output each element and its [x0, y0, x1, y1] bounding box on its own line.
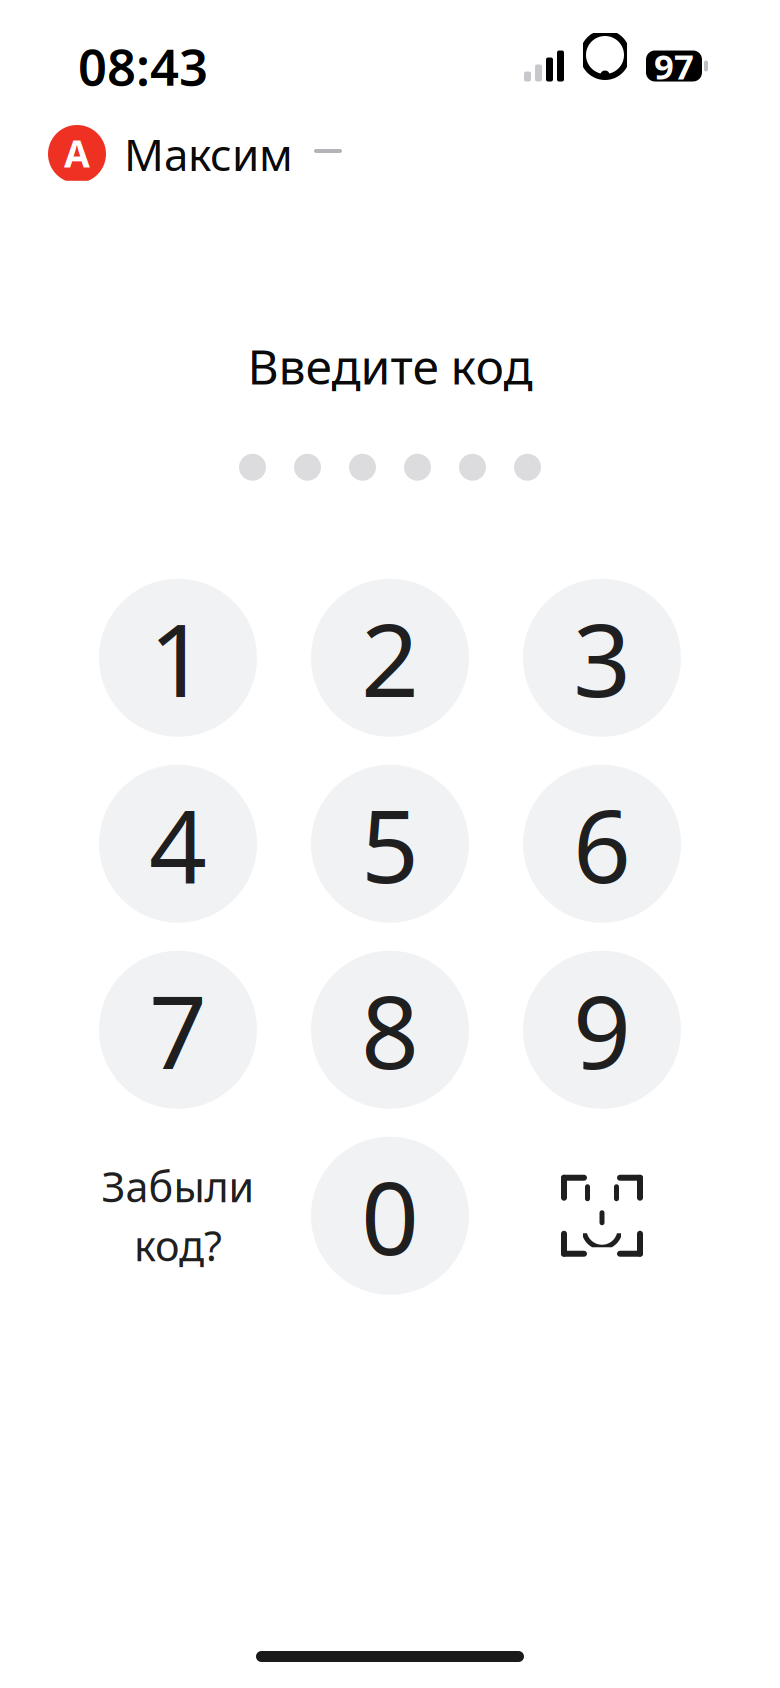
staticText: 2 [361, 590, 419, 725]
staticText: 3 [573, 590, 631, 725]
staticText: 08:43 [78, 32, 208, 100]
button[interactable]: 6 [523, 765, 681, 923]
staticText: код? [134, 1218, 222, 1273]
staticText: 9 [573, 962, 631, 1097]
button[interactable]: Face ID [523, 1137, 681, 1295]
button[interactable]: 1 [99, 579, 257, 737]
staticText: 1 [149, 590, 207, 725]
staticText: 0 [361, 1148, 419, 1283]
button[interactable]: 0 [311, 1137, 469, 1295]
button[interactable]: Забыли [99, 1137, 257, 1295]
staticText: A [64, 128, 90, 178]
staticText: 8 [361, 962, 419, 1097]
staticText: Введите код [247, 334, 532, 398]
button[interactable]: 9 [523, 951, 681, 1109]
button[interactable]: 7 [99, 951, 257, 1109]
staticText: Максим [124, 125, 293, 183]
button[interactable]: 4 [99, 765, 257, 923]
button[interactable]: 5 [311, 765, 469, 923]
button[interactable]: 2 [311, 579, 469, 737]
button[interactable]: 8 [311, 951, 469, 1109]
staticText: 5 [361, 776, 419, 911]
staticText: 4 [149, 776, 207, 911]
staticText: 6 [573, 776, 631, 911]
staticText: Забыли [101, 1159, 254, 1214]
button[interactable]: A [0, 116, 365, 192]
staticText: 7 [149, 962, 207, 1097]
staticText: 97 [654, 43, 694, 89]
button[interactable]: 3 [523, 579, 681, 737]
